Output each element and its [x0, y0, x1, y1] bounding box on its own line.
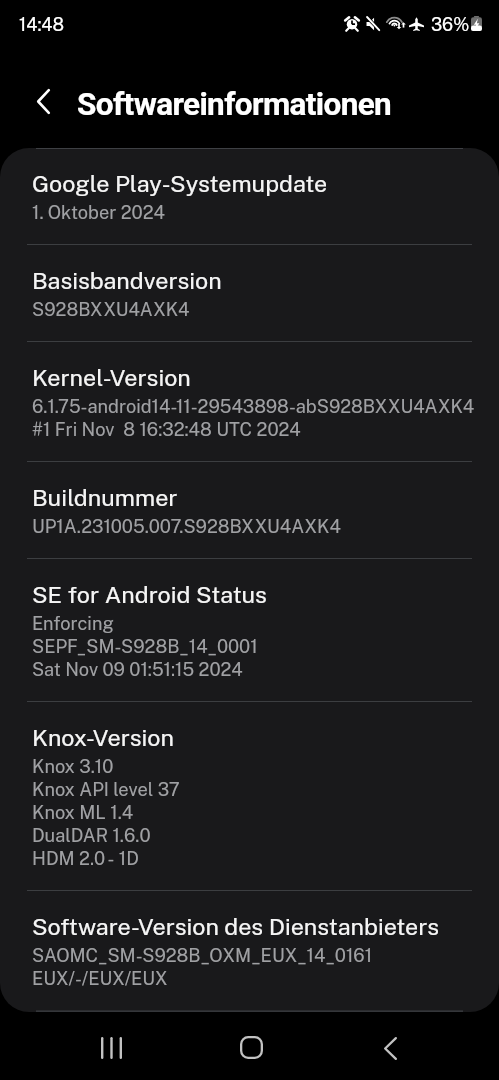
staticText: S928BXXU4AXK4: [32, 297, 190, 320]
staticText: #1 Fri Nov 8 16:32:48 UTC 2024: [32, 417, 301, 440]
button[interactable]: Software-Version des Dienstanbieters: [0, 891, 499, 1010]
staticText: Enforcing: [32, 611, 114, 634]
staticText: Kernel-Version: [32, 364, 191, 391]
staticText: HDM 2.0 - 1D: [32, 846, 139, 869]
button[interactable]: Knox-Version: [0, 702, 499, 890]
staticText: UP1A.231005.007.S928BXXU4AXK4: [32, 514, 341, 537]
button[interactable]: Startbildschirm: [227, 1023, 275, 1071]
button[interactable]: Buildnummer: [0, 462, 499, 558]
staticText: 14:48: [19, 14, 65, 35]
staticText: Knox ML 1.4: [32, 800, 134, 823]
staticText: EUX/-/EUX/EUX: [32, 966, 168, 989]
staticText: SEPF_SM-S928B_14_0001: [32, 634, 258, 657]
button[interactable]: SE for Android Status: [0, 559, 499, 701]
staticText: SE for Android Status: [32, 581, 267, 608]
button[interactable]: Basisbandversion: [0, 245, 499, 341]
staticText: Softwareinformationen: [77, 86, 392, 123]
button[interactable]: Zurück: [22, 80, 64, 122]
button[interactable]: Zurück: [366, 1024, 414, 1072]
staticText: 1. Oktober 2024: [32, 200, 166, 223]
staticText: Buildnummer: [32, 484, 178, 511]
button[interactable]: Letzte Apps: [87, 1024, 135, 1072]
staticText: Sat Nov 09 01:51:15 2024: [32, 657, 243, 680]
button[interactable]: Google Play-Systemupdate: [0, 148, 499, 244]
staticText: DualDAR 1.6.0: [32, 823, 151, 846]
staticText: Basisbandversion: [32, 267, 222, 294]
staticText: Software-Version des Dienstanbieters: [32, 913, 440, 940]
staticText: Knox API level 37: [32, 777, 180, 800]
button[interactable]: Kernel-Version: [0, 342, 499, 461]
staticText: Knox 3.10: [32, 754, 114, 777]
staticText: Knox-Version: [32, 724, 174, 751]
staticText: SAOMC_SM-S928B_OXM_EUX_14_0161: [32, 943, 373, 966]
staticText: 36%: [431, 14, 470, 35]
staticText: 6.1.75-android14-11-29543898-abS928BXXU4…: [32, 394, 475, 417]
staticText: Google Play-Systemupdate: [32, 170, 328, 197]
